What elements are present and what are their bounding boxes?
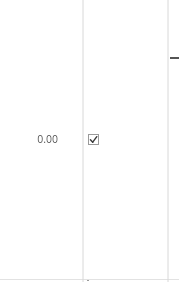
staticText: 0.00 xyxy=(37,132,58,146)
button[interactable]: 0.00 xyxy=(0,0,179,280)
button[interactable]: Checked xyxy=(88,134,99,145)
